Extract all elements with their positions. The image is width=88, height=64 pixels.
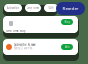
button[interactable]: Subscribe [4,4,22,12]
button[interactable]: One time [25,4,41,12]
staticText: Edit [64,45,69,49]
button[interactable]: Reorder [56,2,85,15]
staticText: One time [26,6,39,10]
staticText: Every 2 weeks [14,46,32,50]
staticText: Buy [64,20,69,24]
button[interactable]: Gift [44,4,58,12]
staticText: Subscribe & save [14,43,36,46]
staticText: Reorder [62,6,78,11]
button[interactable]: Edit [61,44,73,50]
staticText: One time Buy [6,29,25,32]
button[interactable]: Buy [61,19,73,25]
staticText: Subscribe [6,6,19,10]
staticText: Gift [48,6,53,10]
